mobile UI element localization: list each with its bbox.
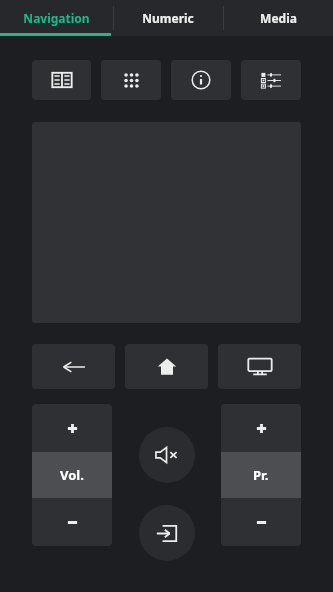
- button[interactable]: Keypad: [101, 60, 161, 100]
- button[interactable]: Navigation: [0, 0, 113, 36]
- staticText: Vol.: [60, 466, 84, 484]
- staticText: Navigation: [23, 10, 90, 26]
- button[interactable]: Pr. up: [221, 404, 301, 452]
- button[interactable]: Vol. down: [32, 498, 112, 546]
- button[interactable]: Pr. down: [221, 498, 301, 546]
- button[interactable]: Input source: [139, 505, 195, 561]
- button[interactable]: Home: [125, 344, 208, 389]
- button[interactable]: Numeric: [113, 0, 223, 36]
- button[interactable]: Info: [171, 60, 231, 100]
- button[interactable]: Media: [223, 0, 333, 36]
- staticText: Media: [260, 10, 297, 26]
- button[interactable]: Back: [32, 344, 115, 389]
- button[interactable]: TV: [218, 344, 301, 389]
- staticText: Numeric: [142, 10, 194, 26]
- button[interactable]: Settings: [241, 60, 301, 100]
- button[interactable]: Guide: [32, 60, 91, 100]
- button[interactable]: Vol.: [32, 452, 112, 498]
- button[interactable]: Pr.: [221, 452, 301, 498]
- button[interactable]: Vol. up: [32, 404, 112, 452]
- staticText: Pr.: [253, 466, 269, 484]
- button[interactable]: Mute: [139, 427, 195, 483]
